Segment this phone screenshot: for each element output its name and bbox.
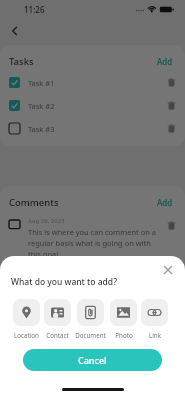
staticText: Task #3 <box>28 124 167 134</box>
staticText: Task #2 <box>28 101 167 111</box>
button[interactable]: Document <box>77 299 104 326</box>
button[interactable]: Close <box>159 261 177 279</box>
staticText: Aug 28, 2023 <box>28 217 65 225</box>
button[interactable]: Delete Task #3 <box>167 124 176 133</box>
button[interactable]: Task #3 <box>9 123 176 134</box>
button[interactable]: Delete comment <box>167 221 176 230</box>
button[interactable]: Back <box>6 22 24 40</box>
button[interactable]: Cancel <box>23 349 162 371</box>
staticText: Location <box>14 331 39 339</box>
staticText: Task #1 <box>28 78 167 88</box>
staticText: What do you want to add? <box>11 276 117 288</box>
staticText: Link <box>149 331 161 339</box>
staticText: Add <box>157 56 173 67</box>
button[interactable]: Location <box>13 299 40 326</box>
staticText: Tasks <box>9 55 154 68</box>
staticText: Photo <box>115 331 133 339</box>
button[interactable]: Add <box>154 194 176 211</box>
staticText: This is where you can comment on a regul… <box>28 227 161 259</box>
button[interactable]: Task #2 <box>9 100 176 111</box>
button[interactable]: Link <box>141 299 168 326</box>
staticText: Document <box>75 331 106 339</box>
staticText: Add <box>157 197 173 208</box>
staticText: 11:26 <box>24 4 45 15</box>
button[interactable]: Contact <box>44 299 71 326</box>
staticText: Cancel <box>78 354 107 366</box>
button[interactable]: Photo <box>110 299 137 326</box>
staticText: Comments <box>9 196 154 209</box>
button[interactable]: Add <box>154 53 176 70</box>
button[interactable]: Task #1 <box>9 77 176 88</box>
staticText: Contact <box>46 331 69 339</box>
button[interactable]: Delete Task #2 <box>167 101 176 110</box>
button[interactable]: Delete Task #1 <box>167 78 176 87</box>
